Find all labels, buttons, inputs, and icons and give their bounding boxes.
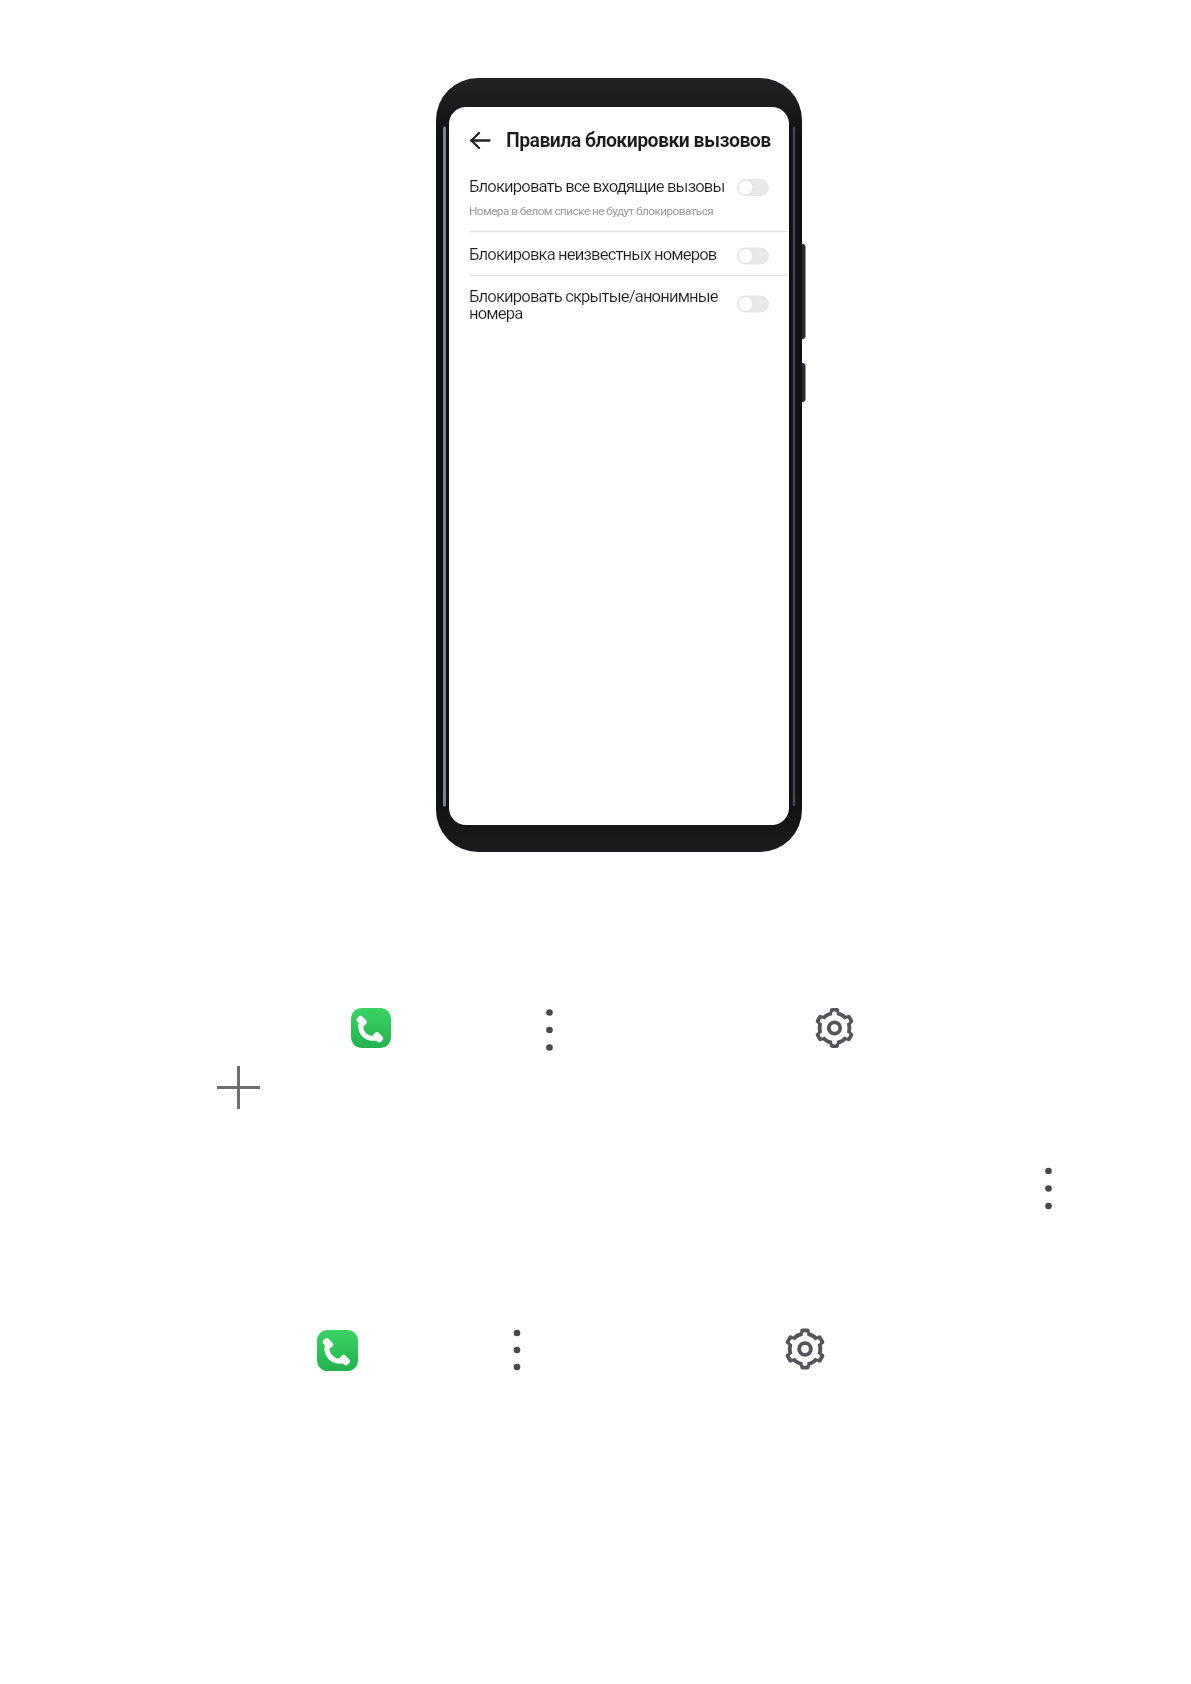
- button[interactable]: [217, 1066, 260, 1109]
- staticText: Блокировать все входящие вызовы: [469, 177, 725, 196]
- staticText: Блокировать скрытые/анонимные: [469, 287, 718, 306]
- button[interactable]: [351, 1008, 391, 1048]
- staticText: Номера в белом списке не будут блокирова…: [469, 204, 714, 218]
- button[interactable]: [455, 282, 785, 324]
- button[interactable]: [784, 1329, 825, 1370]
- staticText: Блокировка неизвестных номеров: [469, 245, 717, 264]
- button[interactable]: [814, 1008, 855, 1049]
- staticText: Правила блокировки вызовов: [506, 129, 771, 152]
- staticText: номера: [469, 304, 523, 323]
- button[interactable]: [317, 1330, 358, 1371]
- button[interactable]: [1034, 1164, 1064, 1214]
- button[interactable]: [502, 1326, 532, 1374]
- button[interactable]: [535, 1005, 565, 1055]
- button[interactable]: [455, 238, 785, 274]
- button[interactable]: [466, 126, 496, 156]
- button[interactable]: [455, 168, 785, 206]
